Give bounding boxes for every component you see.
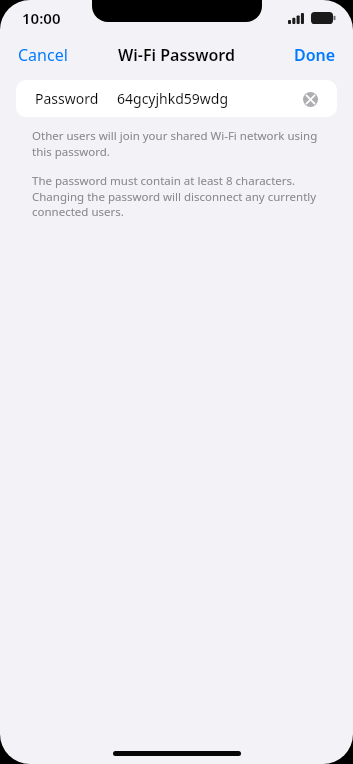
- staticText: Wi-Fi Password: [118, 44, 235, 66]
- staticText: The password must contain at least 8 cha…: [32, 173, 321, 219]
- button[interactable]: Cancel: [0, 40, 78, 70]
- staticText: 10:00: [22, 8, 61, 28]
- staticText: Done: [294, 44, 336, 66]
- staticText: 64gcyjhkd59wdg: [117, 89, 229, 108]
- button[interactable]: Clear password: [299, 88, 321, 110]
- button[interactable]: Password: [16, 80, 337, 117]
- staticText: Password: [35, 89, 99, 108]
- button[interactable]: Done: [284, 40, 353, 70]
- staticText: Other users will join your shared Wi-Fi …: [32, 128, 321, 159]
- staticText: Cancel: [18, 44, 68, 66]
